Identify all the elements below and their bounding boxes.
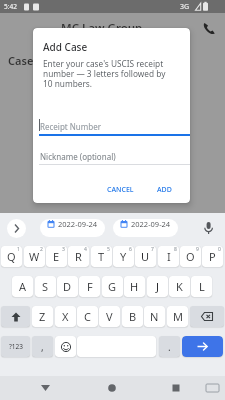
staticText: 0 [218, 246, 221, 253]
staticText: A [19, 279, 27, 294]
staticText: Nickname (optional) [40, 151, 116, 162]
staticText: F [87, 279, 93, 294]
button[interactable]: X [55, 306, 76, 327]
button[interactable]: I [158, 246, 179, 267]
staticText: Enter your case's USCIS receipt number —… [43, 58, 166, 89]
button[interactable]: N [144, 306, 165, 327]
button[interactable]: Y [113, 246, 134, 267]
button[interactable]: ?123 [1, 336, 30, 357]
button[interactable] [55, 336, 76, 357]
button[interactable] [165, 378, 186, 398]
staticText: 5 [107, 246, 110, 253]
button[interactable] [101, 378, 122, 398]
button[interactable]: M [167, 306, 188, 327]
staticText: W [29, 249, 40, 264]
button[interactable]: J [147, 276, 168, 297]
staticText: P [209, 249, 216, 264]
staticText: T [98, 249, 105, 264]
staticText: 2022-09-24 [58, 219, 98, 229]
staticText: D [63, 279, 72, 294]
staticText: M [173, 309, 183, 324]
button[interactable]: H [124, 276, 145, 297]
button[interactable]: O [180, 246, 201, 267]
staticText: Add Case [43, 40, 88, 54]
button[interactable] [190, 306, 224, 327]
button[interactable]: ADD [157, 185, 172, 195]
staticText: 2 [40, 246, 43, 253]
button[interactable]: Z [32, 306, 53, 327]
button[interactable]: CANCEL [107, 185, 134, 195]
button[interactable]: W [24, 246, 45, 267]
staticText: R [75, 249, 82, 264]
staticText: Receipt Number [40, 121, 102, 132]
staticText: B [129, 309, 137, 324]
button[interactable]: K [169, 276, 190, 297]
staticText: 5:42 [4, 2, 17, 11]
staticText: ADD [157, 185, 172, 195]
button[interactable]: E [46, 246, 67, 267]
button[interactable]: Nickname (optional) [39, 146, 190, 165]
button[interactable]: F [79, 276, 100, 297]
button[interactable] [199, 218, 218, 239]
button[interactable]: Q [1, 246, 22, 267]
staticText: . [168, 340, 171, 354]
button[interactable]: V [99, 306, 120, 327]
staticText: , [41, 340, 44, 354]
staticText: CANCEL [107, 185, 134, 195]
button[interactable]: P [202, 246, 223, 267]
button[interactable]: B [122, 306, 143, 327]
staticText: E [53, 249, 60, 264]
staticText: Z [39, 309, 46, 324]
staticText: ?123 [9, 342, 23, 351]
staticText: Cases [8, 53, 39, 68]
staticText: 6 [129, 246, 132, 253]
staticText: 3 [62, 246, 65, 253]
button[interactable] [182, 336, 223, 357]
button[interactable]: T [91, 246, 112, 267]
button[interactable] [202, 378, 223, 398]
staticText: K [176, 279, 183, 294]
button[interactable] [35, 378, 56, 398]
button[interactable]: C [77, 306, 98, 327]
staticText: U [141, 249, 150, 264]
button[interactable]: Receipt Number [39, 114, 190, 136]
staticText: 1 [17, 246, 20, 253]
staticText: Q [7, 249, 16, 264]
button[interactable]: S [35, 276, 56, 297]
button[interactable]: U [135, 246, 156, 267]
button[interactable]: D [57, 276, 78, 297]
button[interactable] [7, 219, 26, 238]
staticText: G [108, 279, 117, 294]
button[interactable] [1, 306, 30, 327]
staticText: 8 [174, 246, 177, 253]
button[interactable]: G [102, 276, 123, 297]
button[interactable]: , [32, 336, 53, 357]
staticText: C [84, 309, 91, 324]
staticText: 2022-09-24 [131, 219, 171, 229]
staticText: S [42, 279, 49, 294]
staticText: J [156, 279, 160, 294]
staticText: 7 [151, 246, 154, 253]
staticText: I [167, 249, 171, 264]
staticText: 3G [180, 2, 190, 12]
staticText: L [199, 279, 205, 294]
button[interactable]: 2022-09-24 [40, 219, 105, 237]
staticText: X [62, 309, 69, 324]
staticText: H [130, 279, 139, 294]
button[interactable]: R [68, 246, 89, 267]
button[interactable]: L [191, 276, 212, 297]
staticText: N [150, 309, 159, 324]
staticText: 4 [84, 246, 87, 253]
button[interactable]: . [159, 336, 180, 357]
button[interactable] [199, 18, 220, 39]
button[interactable]: A [12, 276, 33, 297]
staticText: 9 [196, 246, 199, 253]
staticText: MC Law Group [61, 20, 143, 36]
staticText: V [106, 309, 113, 324]
staticText: O [186, 249, 195, 264]
button[interactable]: 2022-09-24 [113, 219, 178, 237]
staticText: Y [120, 249, 127, 264]
